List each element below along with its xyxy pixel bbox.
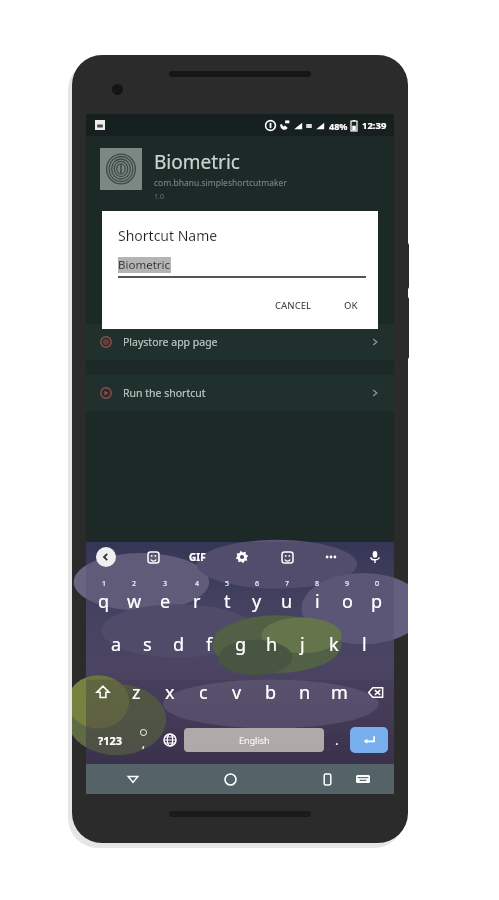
staticText: ?123 bbox=[98, 733, 123, 748]
button[interactable]: Run the shortcut bbox=[86, 375, 394, 411]
staticText: u bbox=[281, 589, 293, 614]
staticText: w bbox=[127, 589, 142, 614]
button[interactable]: 0 bbox=[362, 572, 392, 620]
staticText: 4 bbox=[195, 579, 200, 589]
staticText: s bbox=[143, 632, 152, 657]
staticText: 7 bbox=[285, 579, 290, 589]
button[interactable]: a bbox=[100, 620, 132, 668]
button[interactable]: 1 bbox=[88, 572, 119, 620]
staticText: d bbox=[173, 632, 185, 657]
button[interactable]: j bbox=[287, 620, 318, 668]
staticText: n bbox=[299, 680, 311, 705]
button[interactable]: GIF bbox=[189, 550, 206, 564]
button[interactable]: 8 bbox=[302, 572, 332, 620]
button[interactable]: ?123 bbox=[90, 716, 130, 764]
button[interactable]: h bbox=[256, 620, 287, 668]
button[interactable]: g bbox=[225, 620, 256, 668]
staticText: GIF bbox=[189, 550, 206, 564]
staticText: OK bbox=[344, 299, 358, 312]
staticText: x bbox=[165, 680, 175, 705]
button[interactable]: 6 bbox=[242, 572, 272, 620]
button[interactable]: Enter bbox=[350, 727, 388, 753]
button[interactable]: English bbox=[184, 728, 324, 752]
staticText: l bbox=[362, 632, 367, 657]
button[interactable]: l bbox=[349, 620, 380, 668]
button[interactable]: 9 bbox=[332, 572, 362, 620]
staticText: 1.0 bbox=[154, 192, 164, 202]
button[interactable]: 3 bbox=[150, 572, 181, 620]
staticText: com.bhanu.simpleshortcutmaker bbox=[154, 177, 287, 189]
button[interactable]: Shift bbox=[86, 668, 120, 716]
button[interactable]: c bbox=[186, 668, 220, 716]
button[interactable]: Image search bbox=[278, 548, 296, 566]
staticText: f bbox=[206, 632, 213, 657]
staticText: 6 bbox=[255, 579, 260, 589]
button[interactable]: 7 bbox=[272, 572, 302, 620]
staticText: r bbox=[193, 589, 201, 614]
staticText: 9 bbox=[345, 579, 350, 589]
button[interactable]: Settings bbox=[233, 548, 251, 566]
staticText: 2 bbox=[132, 579, 137, 589]
button[interactable]: 2 bbox=[119, 572, 150, 620]
button[interactable]: 4 bbox=[181, 572, 212, 620]
button[interactable]: n bbox=[288, 668, 322, 716]
button[interactable]: Back bbox=[96, 547, 116, 567]
button[interactable]: m bbox=[322, 668, 356, 716]
staticText: z bbox=[132, 680, 141, 705]
staticText: CANCEL bbox=[275, 299, 312, 312]
staticText: t bbox=[224, 589, 231, 614]
staticText: o bbox=[342, 589, 353, 614]
staticText: Run the shortcut bbox=[123, 386, 206, 400]
staticText: j bbox=[300, 632, 305, 657]
staticText: y bbox=[252, 589, 262, 614]
staticText: p bbox=[371, 589, 383, 614]
staticText: , bbox=[142, 736, 145, 751]
button[interactable]: Home bbox=[217, 766, 243, 792]
button[interactable]: f bbox=[194, 620, 225, 668]
staticText: Shortcut Name bbox=[118, 226, 218, 245]
staticText: a bbox=[111, 632, 122, 657]
button[interactable]: s bbox=[132, 620, 163, 668]
button[interactable]: Voice input bbox=[366, 548, 384, 566]
button[interactable]: Stickers bbox=[144, 548, 162, 566]
staticText: 5 bbox=[225, 579, 230, 589]
button[interactable]: CANCEL bbox=[267, 294, 320, 317]
button[interactable]: Emoji and comma bbox=[130, 716, 156, 764]
button[interactable]: OK bbox=[336, 294, 366, 317]
staticText: v bbox=[232, 680, 242, 705]
staticText: Biometric bbox=[154, 149, 240, 175]
staticText: k bbox=[329, 632, 339, 657]
button[interactable]: Change language bbox=[156, 716, 184, 764]
staticText: 3 bbox=[163, 579, 168, 589]
button[interactable]: x bbox=[153, 668, 186, 716]
staticText: b bbox=[265, 680, 277, 705]
staticText: i bbox=[315, 589, 320, 614]
staticText: 12:39 bbox=[362, 119, 387, 132]
staticText: e bbox=[160, 589, 171, 614]
staticText: . bbox=[335, 731, 339, 749]
button[interactable]: d bbox=[163, 620, 194, 668]
staticText: c bbox=[199, 680, 208, 705]
button[interactable]: b bbox=[254, 668, 288, 716]
button[interactable]: k bbox=[318, 620, 349, 668]
staticText: 0 bbox=[375, 579, 380, 589]
staticText: Playstore app page bbox=[123, 335, 218, 349]
button[interactable]: Back bbox=[120, 766, 146, 792]
button[interactable]: z bbox=[120, 668, 153, 716]
staticText: 48% bbox=[329, 120, 348, 132]
button[interactable]: Switch keyboard bbox=[350, 766, 376, 792]
button[interactable]: Recents bbox=[314, 766, 340, 792]
button[interactable]: v bbox=[220, 668, 254, 716]
button[interactable]: Playstore app page bbox=[86, 324, 394, 360]
staticText: g bbox=[235, 632, 247, 657]
staticText: 1 bbox=[102, 579, 107, 589]
button[interactable]: 5 bbox=[212, 572, 242, 620]
staticText: q bbox=[98, 589, 110, 614]
button[interactable]: Backspace bbox=[356, 668, 394, 716]
button[interactable]: More options bbox=[323, 549, 339, 565]
staticText: m bbox=[331, 680, 348, 705]
staticText: Biometric bbox=[118, 257, 171, 273]
staticText: h bbox=[266, 632, 278, 657]
staticText: 8 bbox=[315, 579, 320, 589]
button[interactable]: . bbox=[324, 716, 350, 764]
